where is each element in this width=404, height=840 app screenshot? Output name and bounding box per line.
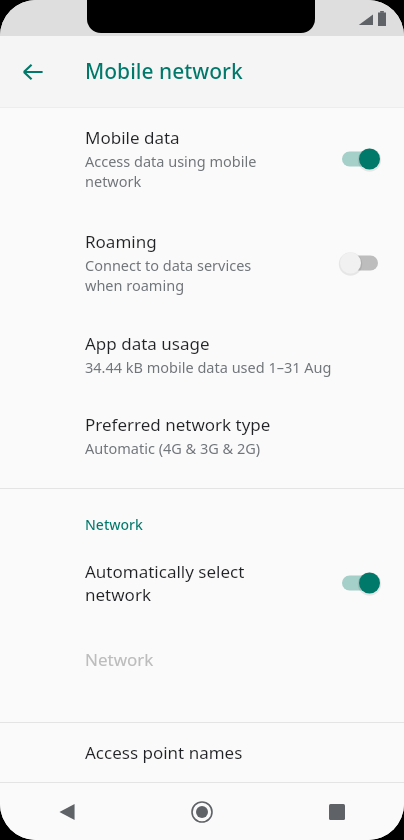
button[interactable]: Automatically select network <box>0 560 404 618</box>
staticText: Roaming <box>85 230 157 253</box>
button[interactable]: Network <box>0 648 404 683</box>
staticText: Mobile network <box>85 57 243 86</box>
button[interactable]: App data usage <box>0 332 404 389</box>
button[interactable]: Preferred network type <box>0 413 404 470</box>
button[interactable]: Back <box>10 49 56 95</box>
button[interactable]: Access point names <box>0 723 404 782</box>
staticText: Automatically select network <box>85 560 245 606</box>
button[interactable]: Back <box>0 783 134 840</box>
staticText: Mobile data <box>85 126 180 149</box>
staticText: Preferred network type <box>85 413 271 436</box>
button[interactable]: Roaming <box>0 230 404 308</box>
staticText: Connect to data services when roaming <box>85 255 252 296</box>
staticText: Automatic (4G & 3G & 2G) <box>85 438 261 458</box>
staticText: Network <box>85 648 154 671</box>
button[interactable]: Mobile data <box>0 116 404 204</box>
button[interactable]: Home <box>134 783 269 840</box>
staticText: Access point names <box>85 741 243 764</box>
staticText: 34.44 kB mobile data used 1–31 Aug <box>85 357 332 377</box>
staticText: App data usage <box>85 332 210 355</box>
staticText: Network <box>85 515 143 534</box>
button[interactable]: Recent apps <box>269 783 404 840</box>
staticText: Access data using mobile network <box>85 151 257 192</box>
